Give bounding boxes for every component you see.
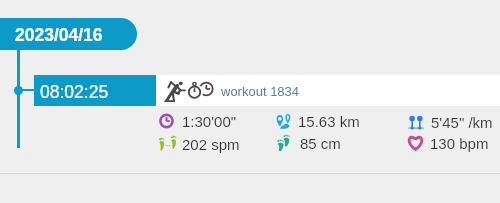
staticText: 08:02:25 xyxy=(40,82,109,102)
button[interactable]: 2023/04/16 xyxy=(0,18,137,50)
other: Pace xyxy=(408,114,424,130)
other: Distance xyxy=(275,113,291,129)
staticText: 1:30'00" xyxy=(182,113,237,130)
button[interactable]: Heart rate xyxy=(407,132,489,154)
staticText: 5'45" /km xyxy=(431,114,493,131)
staticText: 15.63 km xyxy=(298,113,360,130)
other: Duration xyxy=(159,113,174,129)
staticText: 2023/04/16 xyxy=(15,25,103,45)
staticText: workout 1834 xyxy=(221,84,300,99)
button[interactable]: Distance xyxy=(275,110,360,132)
staticText: 130 bpm xyxy=(430,135,489,152)
staticText: 202 spm xyxy=(182,136,240,153)
button[interactable]: Duration xyxy=(159,110,237,132)
button[interactable]: 08:02:25 xyxy=(34,75,500,106)
other: Heart rate xyxy=(407,135,424,151)
staticText: 85 cm xyxy=(300,135,341,152)
button[interactable]: Stride xyxy=(277,132,341,154)
button[interactable]: Cadence xyxy=(159,133,240,155)
other: Stride xyxy=(277,135,290,151)
other: Cadence xyxy=(159,136,176,152)
button[interactable]: Pace xyxy=(408,111,493,133)
